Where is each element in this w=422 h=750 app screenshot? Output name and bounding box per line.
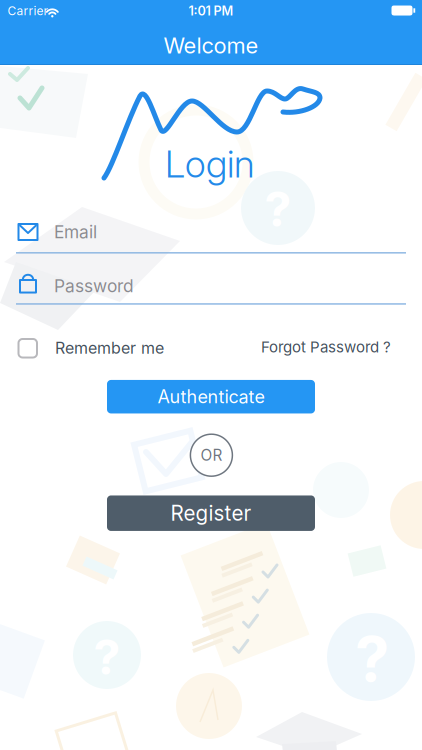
staticText: OR <box>200 446 222 464</box>
staticText: Login <box>165 141 255 187</box>
staticText: Welcome <box>163 32 258 59</box>
staticText: Forgot Password ? <box>261 338 391 356</box>
staticText: Remember me <box>55 338 164 358</box>
staticText: Authenticate <box>157 386 264 408</box>
button[interactable]: Authenticate <box>107 380 315 413</box>
button[interactable]: Password <box>14 268 408 308</box>
button[interactable]: Register <box>107 495 315 531</box>
button[interactable]: Email <box>14 216 408 256</box>
staticText: Carrier <box>7 4 48 18</box>
staticText: Password <box>54 275 134 296</box>
staticText: Register <box>170 501 251 526</box>
staticText: ? <box>93 628 120 686</box>
staticText: Email <box>54 221 97 242</box>
button[interactable]: Forgot Password ? <box>251 335 391 359</box>
staticText: 1:01 PM <box>188 3 233 19</box>
button[interactable]: Remember me <box>14 335 230 362</box>
staticText: ? <box>355 622 389 696</box>
staticText: ? <box>264 180 291 238</box>
